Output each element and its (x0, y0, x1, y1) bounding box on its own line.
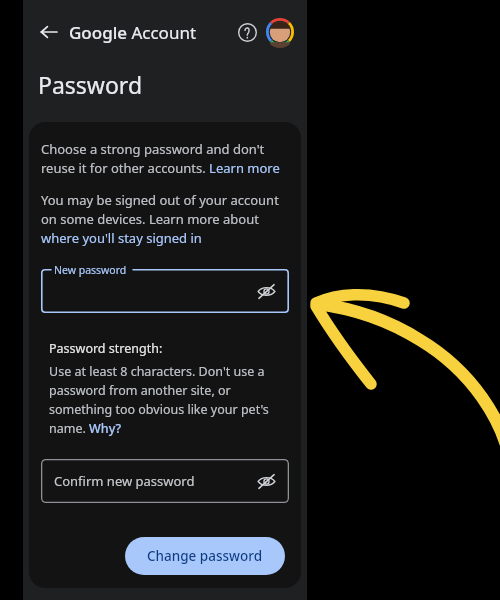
button[interactable]: Show password (251, 276, 281, 306)
staticText: New password (54, 263, 127, 277)
staticText: You may be signed out of your account on… (41, 191, 289, 247)
button[interactable]: Help (230, 15, 264, 49)
staticText: Google Account (69, 21, 197, 44)
staticText: Change password (147, 547, 263, 565)
staticText: Use at least 8 characters. Don't use a p… (49, 363, 283, 437)
button[interactable]: New password (41, 269, 289, 313)
button[interactable]: Back (31, 14, 67, 50)
staticText: Choose a strong password and don't reuse… (41, 140, 289, 177)
button[interactable]: Account profile (264, 16, 296, 48)
button[interactable]: Confirm new password (41, 459, 289, 503)
staticText: Confirm new password (54, 472, 195, 490)
staticText: Password strength: (49, 340, 163, 357)
button[interactable]: Change password (125, 537, 285, 575)
staticText: Password (38, 69, 143, 100)
button[interactable]: Show confirm password (251, 466, 281, 496)
